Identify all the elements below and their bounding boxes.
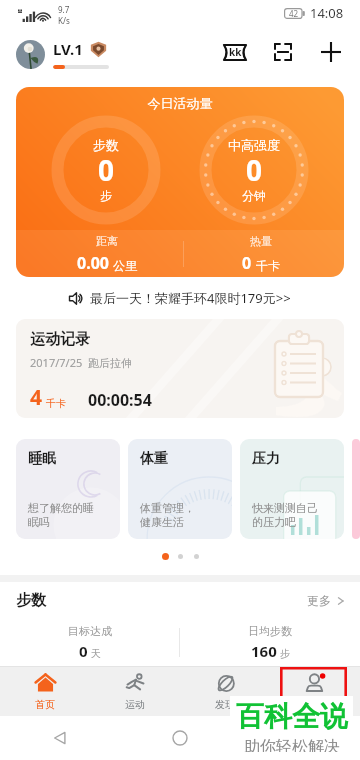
staticText: 步数 <box>16 591 46 610</box>
staticText: 体重管理， 健康生活 <box>140 501 195 529</box>
staticText: 运动 <box>125 698 145 711</box>
button[interactable]: 最后一天！荣耀手环4限时179元>> <box>0 277 360 319</box>
staticText: 睡眠 <box>28 450 56 468</box>
staticText: 运动记录 <box>30 330 90 349</box>
staticText: 更多 <box>307 593 331 608</box>
staticText: 2017/7/25 跑后拉伸 <box>30 355 132 370</box>
button[interactable]: Add <box>316 37 346 67</box>
staticText: 0 <box>246 151 263 189</box>
staticText: 今日活动量 <box>16 95 344 111</box>
staticText: 4 <box>30 383 43 412</box>
staticText: 百科全说 <box>236 699 348 734</box>
staticText: K/s <box>58 15 70 26</box>
button[interactable]: Profile avatar <box>16 40 45 69</box>
staticText: 首页 <box>35 698 55 711</box>
staticText: 步 <box>100 188 112 203</box>
button[interactable]: 运动记录 <box>16 319 344 418</box>
staticText: 公里 <box>113 258 137 273</box>
staticText: 快来测测自己 的压力吧 <box>252 501 318 529</box>
button[interactable]: 步数 <box>16 582 346 619</box>
button[interactable]: 体重 <box>128 439 232 539</box>
staticText: 160 <box>251 641 277 661</box>
staticText: 体重 <box>140 450 168 468</box>
staticText: 助你轻松解决 <box>244 737 340 752</box>
staticText: 日均步数 <box>248 624 292 638</box>
button[interactable]: Coupons <box>220 37 250 67</box>
staticText: 热量 <box>250 234 272 248</box>
staticText: 千卡 <box>46 397 66 410</box>
staticText: 想了解您的睡 眠吗 <box>28 501 94 529</box>
staticText: 0 <box>242 252 252 274</box>
staticText: 00:00:54 <box>88 389 152 411</box>
staticText: 天 <box>91 647 101 660</box>
staticText: 发现 <box>215 698 235 711</box>
button[interactable]: 今日活动量 <box>16 87 344 277</box>
staticText: 我的 <box>305 698 325 711</box>
staticText: 0 <box>79 641 88 661</box>
button[interactable]: Scan <box>268 37 298 67</box>
staticText: 中高强度 <box>228 137 280 153</box>
staticText: 千卡 <box>256 258 280 273</box>
button[interactable]: Back <box>0 716 120 760</box>
staticText: 压力 <box>252 450 280 468</box>
staticText: 目标达成 <box>68 624 112 638</box>
button[interactable]: 首页 <box>0 667 90 716</box>
staticText: LV.1 <box>53 39 83 59</box>
staticText: 14:08 <box>310 4 344 22</box>
button[interactable]: 睡眠 <box>16 439 120 539</box>
button[interactable] <box>352 439 360 539</box>
staticText: 距离 <box>96 234 118 248</box>
button[interactable]: 运动 <box>90 667 180 716</box>
button[interactable]: 我的 <box>270 667 360 716</box>
staticText: 9.7 <box>58 4 70 15</box>
staticText: 步数 <box>93 137 119 153</box>
staticText: 分钟 <box>242 188 266 203</box>
staticText: 最后一天！荣耀手环4限时179元>> <box>90 289 291 307</box>
staticText: 0.00 <box>77 252 109 274</box>
staticText: kk <box>229 45 242 59</box>
button[interactable]: Home <box>120 716 240 760</box>
staticText: 步 <box>280 647 290 660</box>
button[interactable]: 发现 <box>180 667 270 716</box>
staticText: 42 <box>289 8 299 19</box>
staticText: 0 <box>98 151 115 189</box>
button[interactable]: 压力 <box>240 439 344 539</box>
